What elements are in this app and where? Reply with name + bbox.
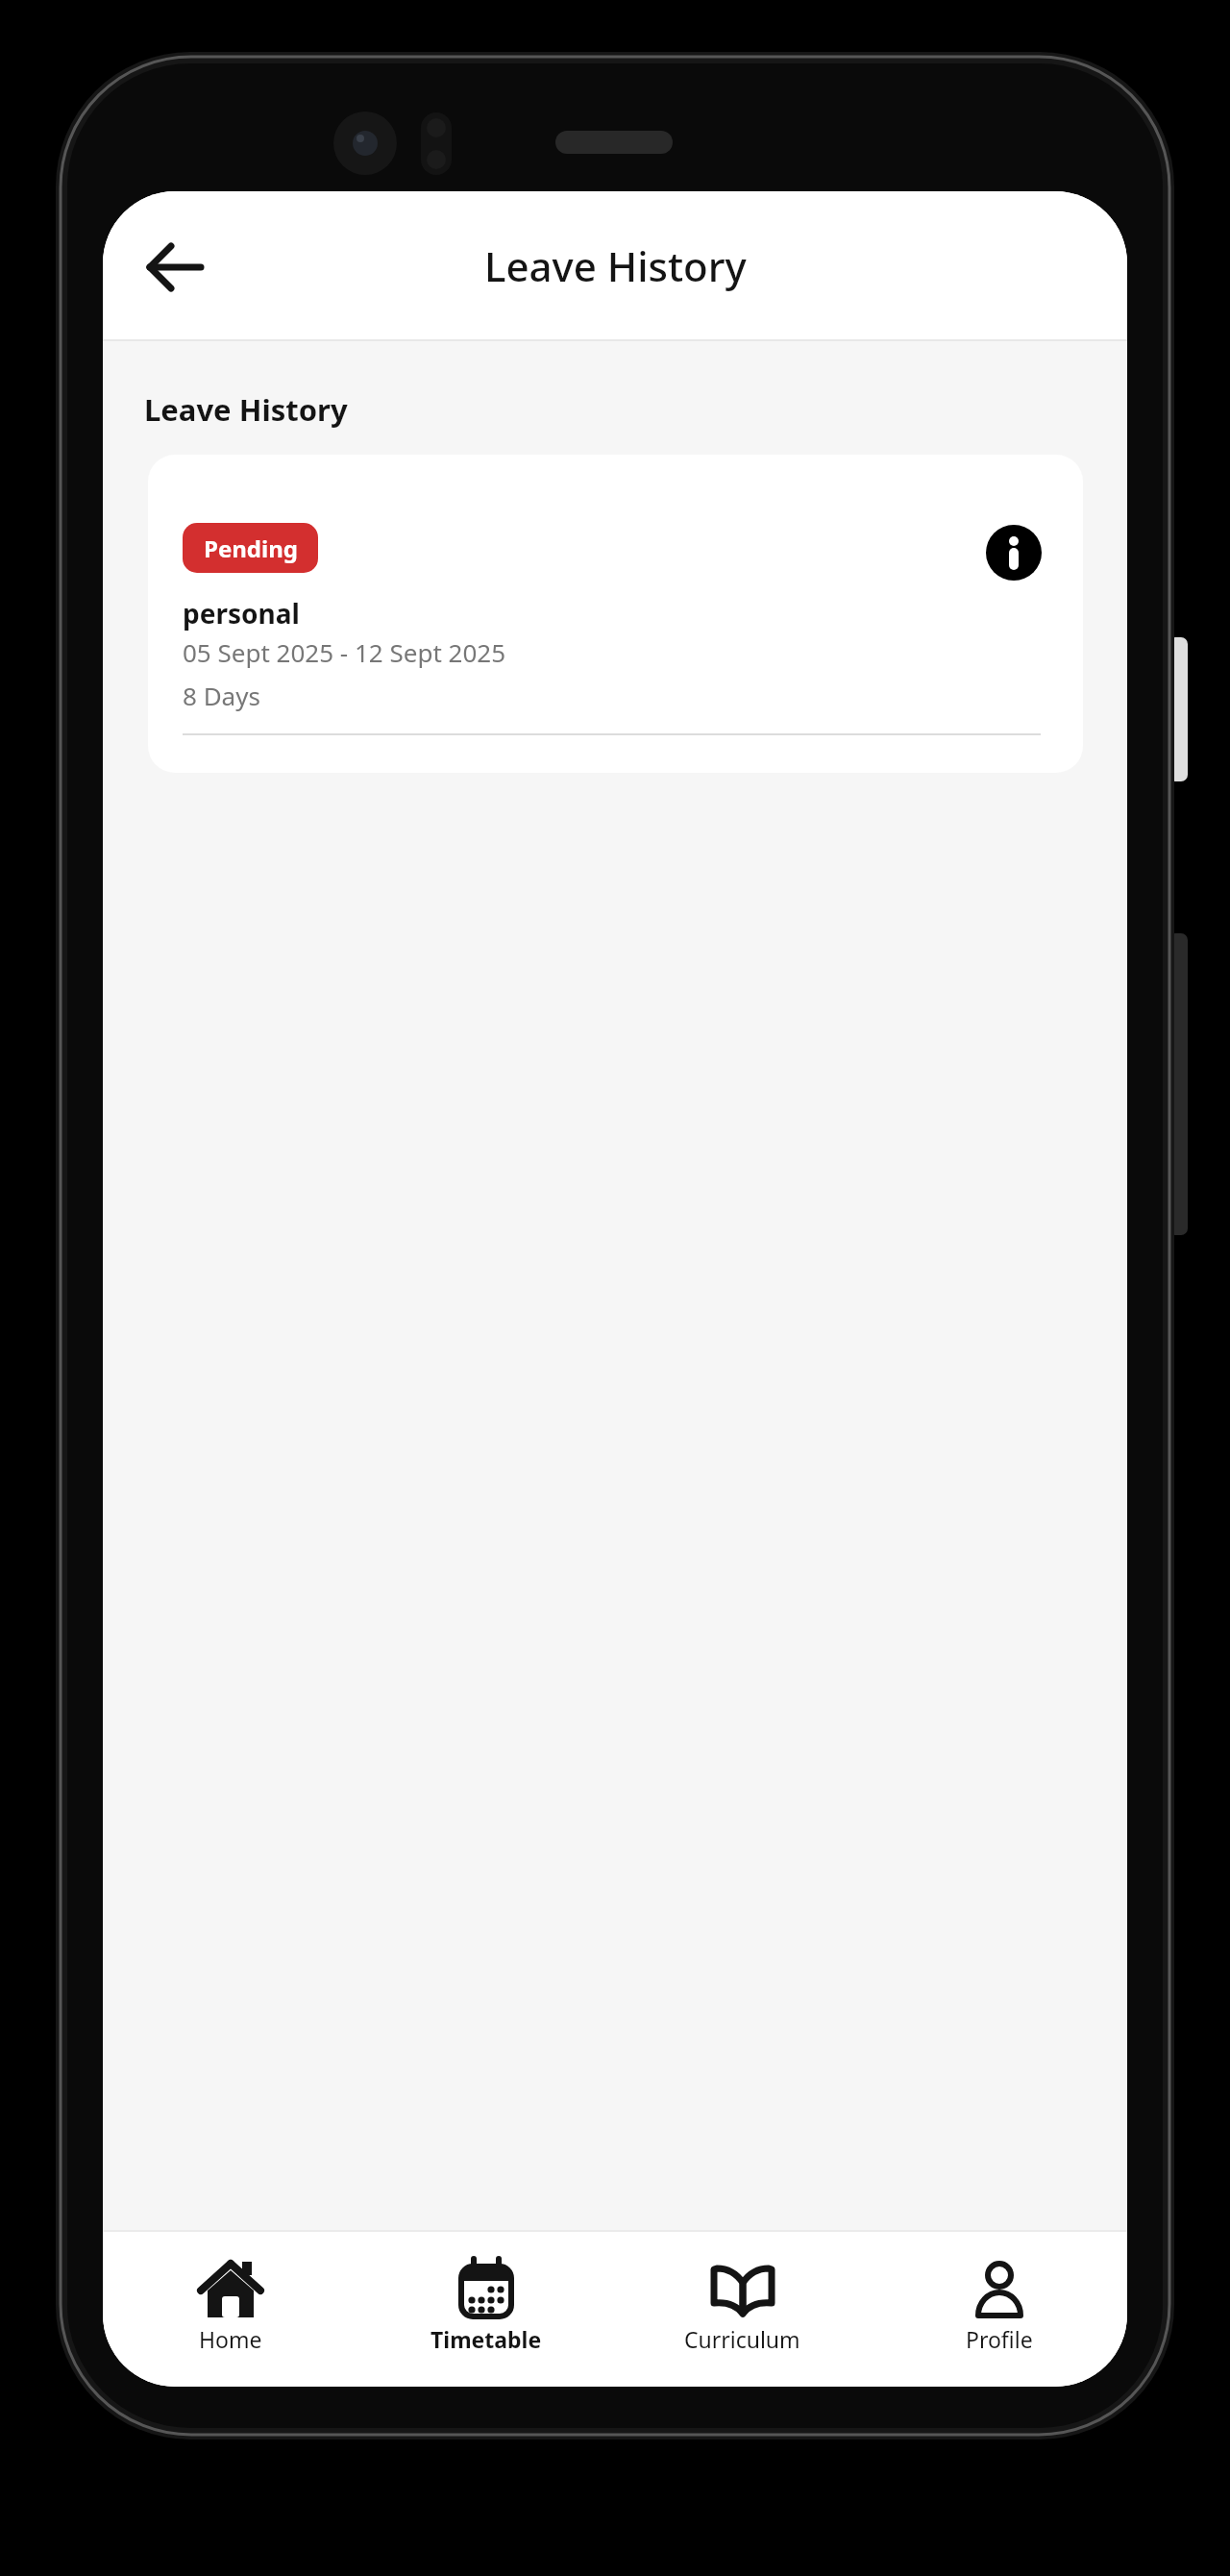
staticText: Curriculum: [684, 2324, 800, 2354]
staticText: 8 Days: [183, 679, 260, 712]
button[interactable]: [986, 525, 1042, 581]
button[interactable]: Home: [103, 2232, 358, 2387]
button[interactable]: [141, 235, 203, 296]
button[interactable]: Pending: [183, 523, 318, 573]
staticText: 05 Sept 2025 - 12 Sept 2025: [183, 635, 506, 669]
staticText: Pending: [204, 533, 298, 564]
staticText: personal: [183, 595, 300, 632]
staticText: Timetable: [430, 2324, 542, 2354]
staticText: Home: [199, 2324, 262, 2354]
staticText: Profile: [966, 2324, 1033, 2354]
button[interactable]: Curriculum: [614, 2232, 871, 2387]
staticText: Leave History: [484, 238, 747, 293]
button[interactable]: Pending: [148, 455, 1083, 773]
button[interactable]: Timetable: [358, 2232, 614, 2387]
staticText: Leave History: [144, 389, 348, 430]
button[interactable]: Profile: [871, 2232, 1127, 2387]
